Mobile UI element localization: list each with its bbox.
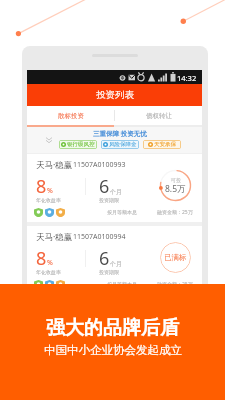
staticText: 8.5万: [165, 183, 186, 195]
staticText: %: [47, 186, 53, 196]
staticText: 散标投资: [58, 112, 84, 120]
staticText: 11507A0100994: [73, 232, 126, 242]
button[interactable]: 天马·稳赢: [27, 154, 202, 222]
staticText: 年化收益率: [36, 269, 61, 275]
staticText: 天马·稳赢: [36, 159, 73, 171]
staticText: 天马·稳赢: [36, 231, 73, 243]
staticText: 8: [36, 246, 47, 271]
staticText: 6: [99, 174, 110, 199]
staticText: 强大的品牌后盾: [46, 316, 179, 340]
staticText: 按月等额本息: [107, 281, 137, 287]
staticText: 可投: [171, 177, 181, 183]
staticText: 年化收益率: [36, 197, 61, 203]
staticText: 债权转让: [146, 112, 172, 120]
staticText: 已满标: [164, 253, 187, 262]
staticText: 14:32: [177, 73, 197, 83]
staticText: 投资期限: [99, 269, 119, 275]
staticText: 中国中小企业协会发起成立: [44, 343, 182, 357]
staticText: 个月: [110, 188, 122, 196]
button[interactable]: 三重保障 投资无忧: [27, 127, 202, 153]
staticText: 个月: [110, 260, 122, 268]
staticText: 天安承保: [154, 141, 176, 148]
staticText: 按月等额本息: [107, 209, 137, 215]
staticText: 投资列表: [96, 89, 134, 101]
staticText: 银行级风控: [67, 141, 95, 148]
button[interactable]: 天马·稳赢: [27, 226, 202, 294]
staticText: 8: [36, 174, 47, 199]
staticText: 投资期限: [99, 197, 119, 203]
staticText: 融资金额：25万: [157, 281, 193, 288]
staticText: 风险保障金: [109, 141, 137, 148]
staticText: 三重保障 投资无忧: [93, 129, 147, 138]
staticText: 6: [99, 246, 110, 271]
staticText: 融资金额：25万: [157, 209, 193, 216]
staticText: %: [47, 258, 53, 268]
button[interactable]: 散标投资: [27, 106, 114, 125]
button[interactable]: 债权转让: [115, 106, 202, 125]
staticText: 11507A0100993: [73, 160, 126, 170]
